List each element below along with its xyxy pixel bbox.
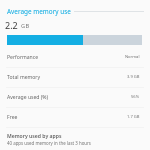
staticText: 1.7 GB: [127, 114, 140, 120]
staticText: Normal: [125, 54, 140, 60]
button[interactable]: Average used (%): [0, 87, 150, 107]
staticText: 2.2: [5, 19, 18, 31]
staticText: Memory used by apps: [7, 133, 62, 140]
staticText: Free: [7, 114, 18, 121]
staticText: Average memory use: [7, 7, 71, 16]
staticText: 40 apps used memory in the last 3 hours: [7, 140, 91, 146]
staticText: GB: [21, 22, 30, 30]
button[interactable]: Total memory: [0, 67, 150, 87]
staticText: Total memory: [7, 74, 41, 81]
button[interactable]: Free: [0, 107, 150, 127]
button[interactable]: Memory used by apps: [0, 127, 150, 150]
staticText: 3.9 GB: [127, 74, 140, 80]
staticText: 56%: [131, 94, 140, 100]
staticText: Performance: [7, 54, 39, 61]
button[interactable]: Performance: [0, 47, 150, 67]
staticText: Average used (%): [7, 94, 49, 101]
